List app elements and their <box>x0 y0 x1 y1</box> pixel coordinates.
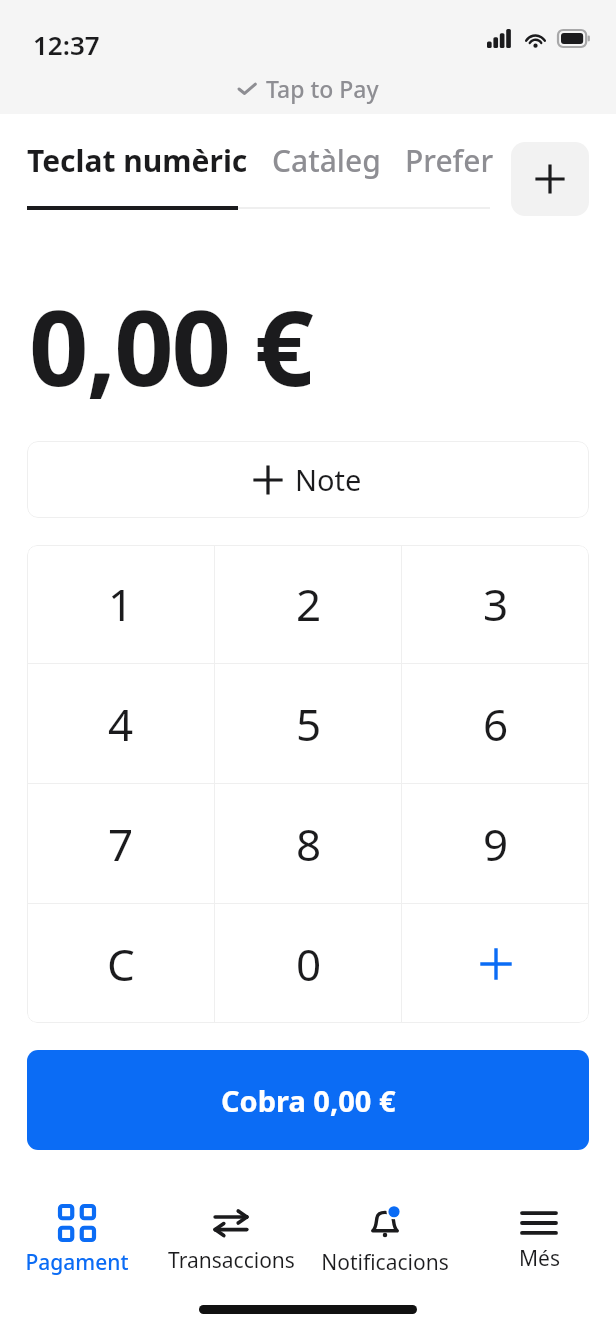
button[interactable]: 5 <box>215 664 402 783</box>
button[interactable]: 9 <box>402 784 589 903</box>
staticText: Notificacions <box>321 1248 449 1277</box>
staticText: Prefer <box>405 140 494 181</box>
button[interactable]: Teclat numèric <box>27 140 248 181</box>
staticText: 0 <box>296 934 322 994</box>
staticText: C <box>107 934 135 994</box>
button[interactable]: 4 <box>27 664 215 783</box>
button[interactable]: 1 <box>27 545 215 663</box>
staticText: Tap to Pay <box>266 73 379 104</box>
staticText: 2 <box>296 574 322 634</box>
staticText: Transaccions <box>168 1246 295 1275</box>
button[interactable]: Prefer <box>405 140 494 181</box>
button[interactable]: Add <box>511 142 589 216</box>
staticText: 5 <box>296 694 322 754</box>
button[interactable]: Notificacions <box>308 1189 462 1294</box>
staticText: 6 <box>483 694 509 754</box>
button[interactable]: 8 <box>215 784 402 903</box>
staticText: Teclat numèric <box>27 140 248 181</box>
button[interactable]: 0 <box>215 904 402 1023</box>
button[interactable]: 6 <box>402 664 589 783</box>
button[interactable]: 3 <box>402 545 589 663</box>
staticText: 3 <box>483 574 509 634</box>
staticText: Pagament <box>25 1248 129 1277</box>
staticText: 12:37 <box>33 27 100 62</box>
button[interactable]: Pagament <box>0 1189 154 1294</box>
staticText: Catàleg <box>272 140 381 181</box>
button[interactable]: Transaccions <box>154 1189 308 1294</box>
staticText: Cobra 0,00 € <box>221 1081 396 1120</box>
staticText: Note <box>295 460 362 499</box>
button[interactable]: Cobra 0,00 € <box>27 1050 589 1150</box>
button[interactable]: C <box>27 904 215 1023</box>
staticText: 9 <box>483 814 509 874</box>
button[interactable]: Note <box>27 441 589 518</box>
staticText: 8 <box>296 814 322 874</box>
button[interactable]: 2 <box>215 545 402 663</box>
staticText: 1 <box>108 574 134 634</box>
staticText: 0,00 € <box>29 275 312 417</box>
button[interactable]: Més <box>462 1189 616 1294</box>
button[interactable]: 7 <box>27 784 215 903</box>
staticText: Més <box>519 1244 560 1273</box>
staticText: 4 <box>108 694 134 754</box>
button[interactable]: Catàleg <box>272 140 381 181</box>
staticText: 7 <box>108 814 134 874</box>
button[interactable] <box>402 904 589 1023</box>
